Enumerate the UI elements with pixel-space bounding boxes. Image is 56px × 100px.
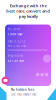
staticText: Rate 0.9213 [7,40,25,43]
staticText: You send [7,27,20,31]
staticText: No hidden fees [11,88,34,91]
staticText: 1,000 USD [7,32,22,36]
staticText: They receive [7,54,23,57]
staticText: Live mid-market rate [11,93,37,96]
staticText: 921.30 EUR [7,59,24,62]
staticText: Exchange with the best rate, convert and… [6,3,50,19]
staticText: Fee 2.40 USD [7,44,26,48]
